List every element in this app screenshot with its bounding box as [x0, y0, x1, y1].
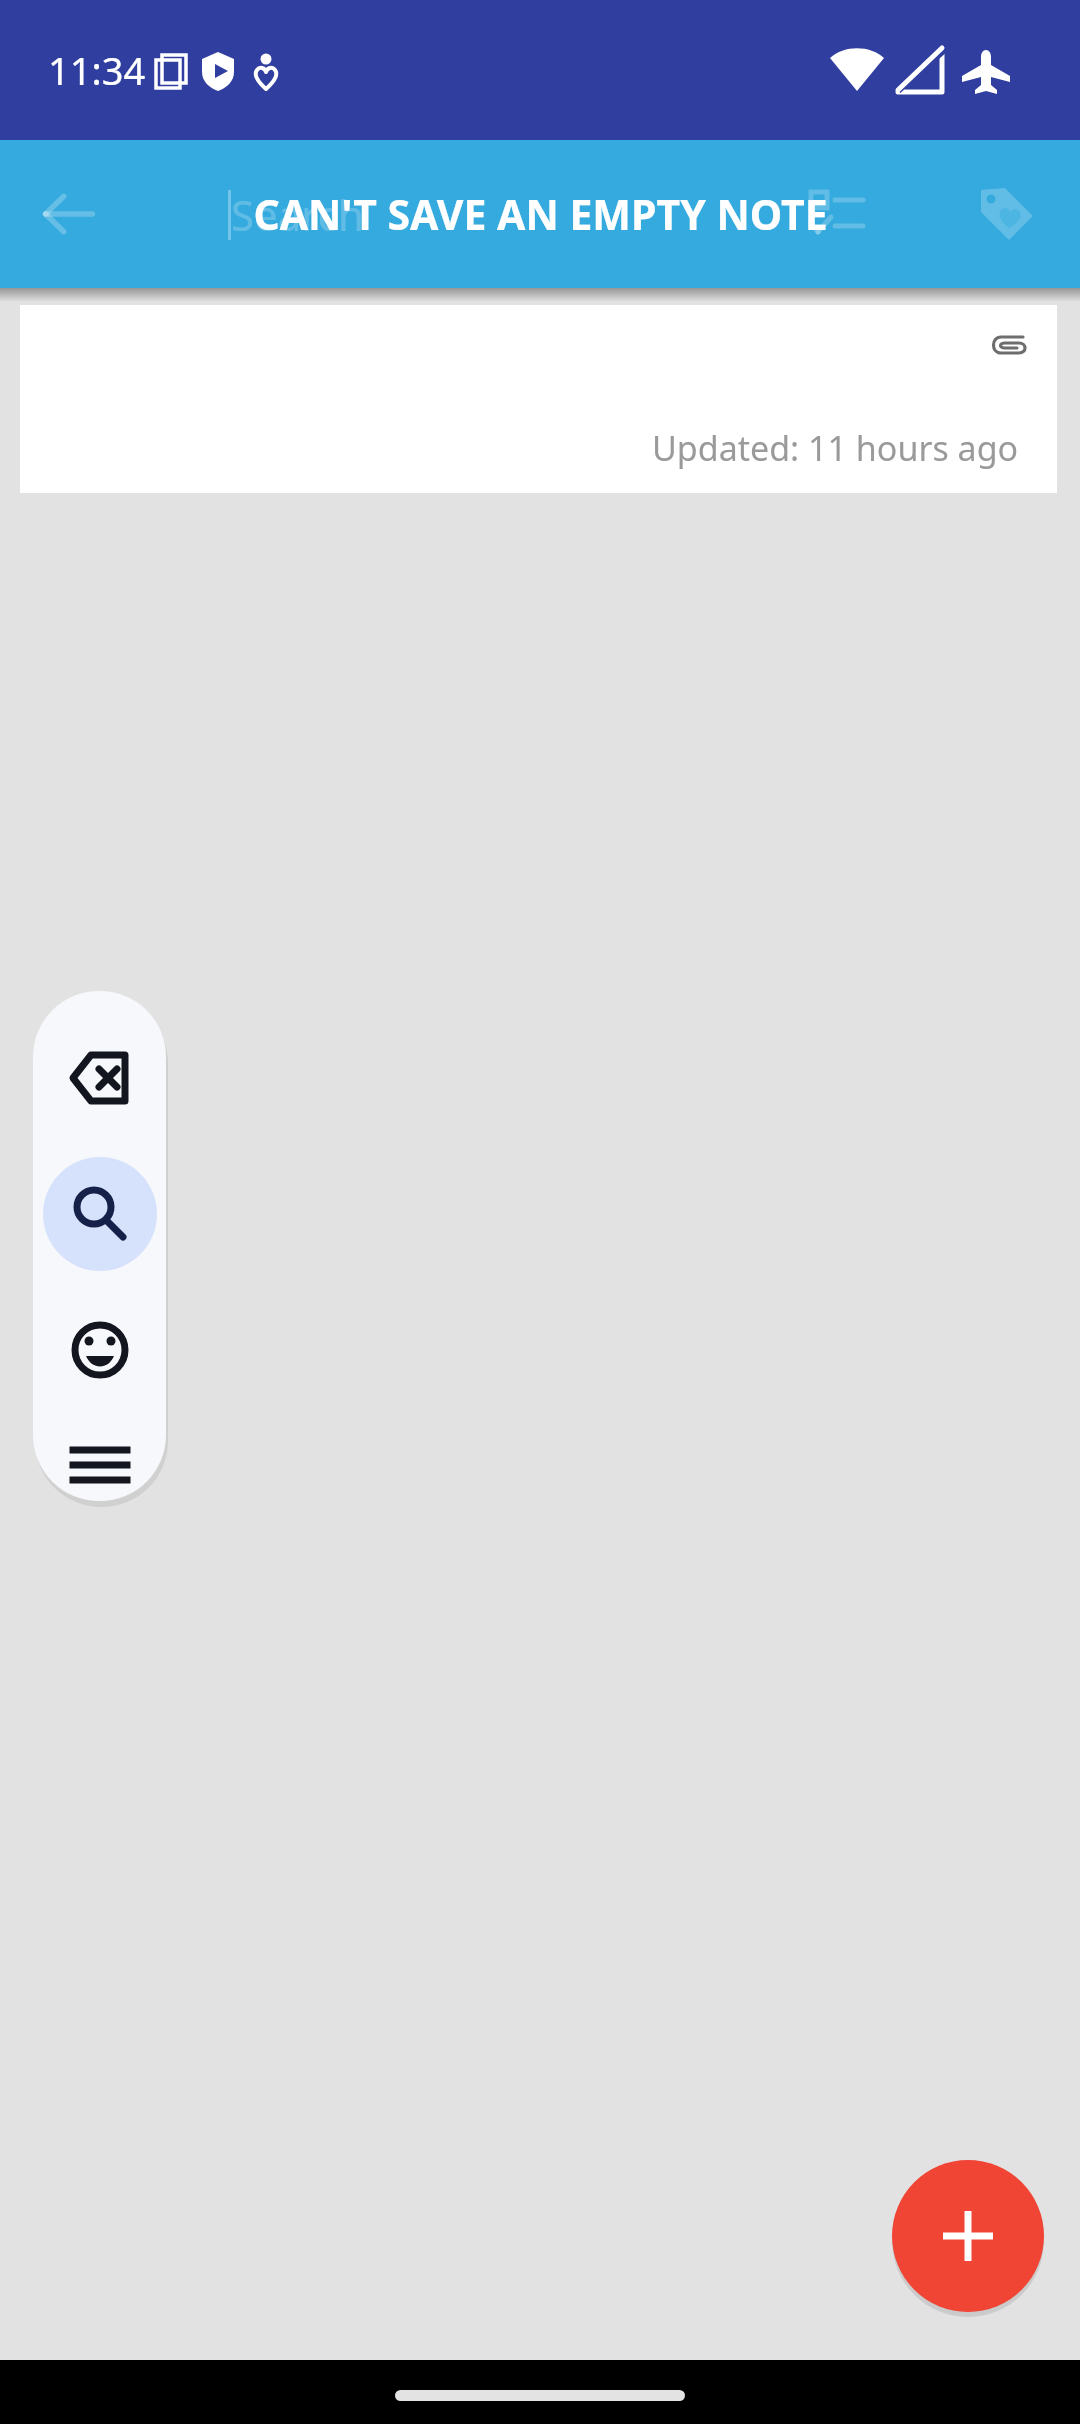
staticText: Updated: 11 hours ago [652, 425, 1019, 471]
staticText: Search [231, 186, 364, 243]
button[interactable]: Checklist [782, 159, 892, 269]
button[interactable]: Tags [952, 159, 1062, 269]
button[interactable]: Attachment [20, 305, 1057, 493]
button[interactable]: Search [43, 1157, 157, 1271]
staticText: CAN'T SAVE AN EMPTY NOTE [253, 186, 828, 242]
button[interactable]: Emoji [43, 1293, 157, 1407]
button[interactable]: Back [14, 159, 124, 269]
button[interactable]: Menu [43, 1429, 157, 1501]
button[interactable]: Backspace [43, 1021, 157, 1135]
staticText: 11:34 [48, 44, 146, 96]
other: Attachment [987, 323, 1035, 371]
button[interactable]: New note [892, 2160, 1044, 2312]
